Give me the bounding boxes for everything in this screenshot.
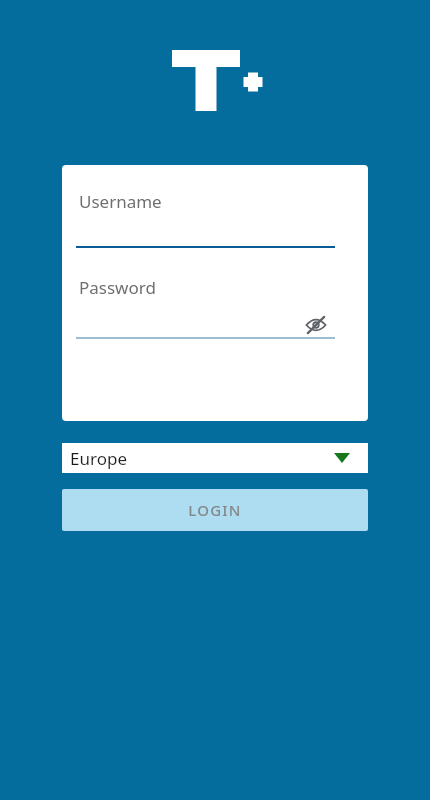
button[interactable]: Show password [298, 307, 334, 343]
staticText: Europe [70, 447, 127, 470]
staticText: Password [79, 276, 156, 299]
button[interactable] [76, 185, 350, 247]
button[interactable]: LOGIN [62, 489, 368, 531]
button[interactable] [76, 271, 306, 333]
button[interactable]: Europe [62, 443, 368, 473]
staticText: LOGIN [188, 500, 242, 520]
staticText: Username [79, 190, 162, 213]
